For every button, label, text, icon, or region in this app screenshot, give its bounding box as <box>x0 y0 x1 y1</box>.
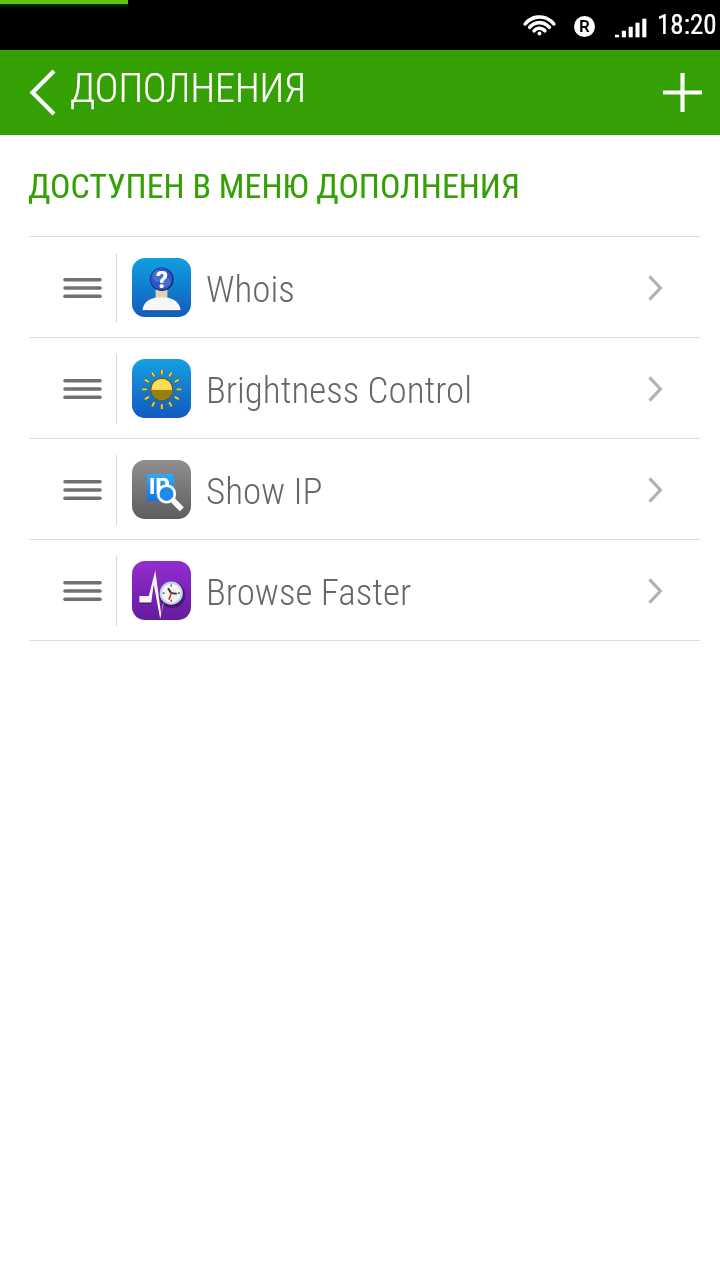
button[interactable]: Browse Faster <box>0 540 720 641</box>
button[interactable]: Brightness Control <box>0 338 720 439</box>
staticText: ДОПОЛНЕНИЯ <box>70 65 306 112</box>
staticText: Browse Faster <box>206 571 412 614</box>
staticText: Show IP <box>206 470 323 513</box>
staticText: IP <box>149 474 170 500</box>
button[interactable]: ? <box>0 237 720 338</box>
staticText: ДОСТУПЕН В МЕНЮ ДОПОЛНЕНИЯ <box>28 166 521 206</box>
staticText: Brightness Control <box>206 369 473 412</box>
button[interactable]: Back <box>0 50 72 135</box>
staticText: 18:20 <box>657 9 717 41</box>
button[interactable]: IP <box>0 439 720 540</box>
staticText: R <box>579 16 590 36</box>
staticText: Whois <box>206 268 295 311</box>
staticText: ? <box>156 266 168 294</box>
button[interactable]: Add <box>642 50 720 135</box>
